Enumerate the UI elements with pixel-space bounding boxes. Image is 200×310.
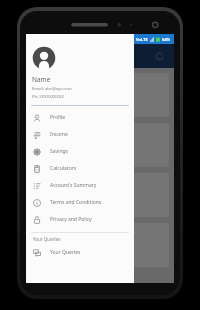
staticText: Savings (50, 148, 68, 155)
button[interactable]: Savings (26, 143, 134, 160)
staticText: Your Queries (33, 236, 61, 242)
button[interactable]: Notifications (150, 47, 168, 65)
button[interactable]: Account's Summary (26, 177, 134, 194)
staticText: Email: abc@xyz.com (32, 86, 72, 92)
staticText: Income (50, 131, 68, 138)
button[interactable]: Terms and Conditions (26, 194, 134, 211)
staticText: Privacy and Policy (50, 216, 92, 223)
staticText: Profile (50, 114, 66, 121)
button[interactable]: Privacy and Policy (26, 211, 134, 228)
staticText: Calculators (50, 165, 77, 172)
staticText: VoLTE (136, 37, 148, 42)
staticText: Ph: XXXXXXXXXX (32, 94, 64, 100)
button[interactable]: Income (26, 126, 134, 143)
button[interactable]: Calculators (26, 160, 134, 177)
staticText: Terms and Conditions (50, 199, 102, 206)
button[interactable]: Your Queries (26, 244, 134, 261)
button[interactable]: Profile (26, 109, 134, 126)
staticText: Account's Summary (50, 182, 97, 189)
staticText: Your Queries (50, 249, 81, 256)
staticText: Name (32, 75, 51, 84)
staticText: 54% (162, 37, 171, 42)
